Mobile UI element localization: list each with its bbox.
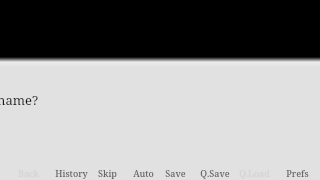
button[interactable]: Skip [87,165,127,180]
staticText: Skip [98,167,117,179]
button[interactable]: Auto [123,165,163,180]
staticText: Auto [133,167,154,179]
staticText: Save [165,167,186,179]
button[interactable]: Prefs [277,165,317,180]
staticText: Q.Load [239,167,270,179]
staticText: Prefs [286,167,309,179]
button[interactable]: Save [155,165,195,180]
staticText: Back [18,167,39,179]
button[interactable]: Q.Load [234,165,274,180]
staticText: History [55,167,88,179]
button[interactable]: History [51,165,91,180]
button[interactable]: Q.Save [195,165,235,180]
button[interactable]: name? [0,68,320,108]
staticText: name? [0,91,39,109]
button[interactable]: Back [8,165,48,180]
staticText: Q.Save [200,167,230,179]
